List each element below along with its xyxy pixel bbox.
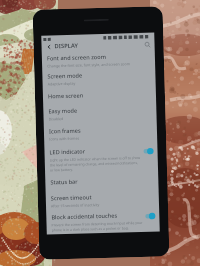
staticText: Font and screen zoom xyxy=(47,53,107,62)
staticText: Screen mode xyxy=(47,71,82,80)
staticText: Status bar xyxy=(50,178,78,186)
button[interactable]: Status bar xyxy=(45,175,158,187)
button[interactable]: Easy mode xyxy=(43,104,157,121)
button[interactable]: Home screen xyxy=(43,89,156,101)
button[interactable]: Block accidental touches xyxy=(46,210,160,232)
button[interactable]: Font and screen zoom xyxy=(42,51,155,69)
staticText: Easy mode xyxy=(48,107,77,115)
staticText: Screen timeout xyxy=(51,193,92,202)
staticText: Icons with frames xyxy=(49,136,79,141)
button[interactable]: Screen mode xyxy=(42,69,156,87)
button[interactable]: Back xyxy=(44,42,53,50)
button[interactable]: Search xyxy=(142,40,152,49)
staticText: LED indicator xyxy=(49,147,86,156)
staticText: Icon frames xyxy=(49,127,81,135)
staticText: Prevent the screen from detecting touch … xyxy=(51,220,143,232)
button[interactable]: LED indicator xyxy=(44,145,158,172)
staticText: Home screen xyxy=(48,91,84,100)
button[interactable]: LED indicator switch xyxy=(142,146,155,156)
button[interactable]: Screen timeout xyxy=(46,191,159,208)
staticText: Light up the LED indicator when the scre… xyxy=(50,155,141,172)
staticText: Disabled xyxy=(48,116,64,121)
staticText: Change the font size, font style, and sc… xyxy=(47,61,130,68)
staticText: After 15 seconds of inactivity xyxy=(51,202,100,208)
button[interactable]: Icon frames xyxy=(44,124,157,141)
staticText: Adaptive display xyxy=(47,81,76,86)
button[interactable]: Block accidental touches switch xyxy=(144,211,156,221)
staticText: DISPLAY xyxy=(54,42,79,50)
staticText: Block accidental touches xyxy=(51,212,117,221)
